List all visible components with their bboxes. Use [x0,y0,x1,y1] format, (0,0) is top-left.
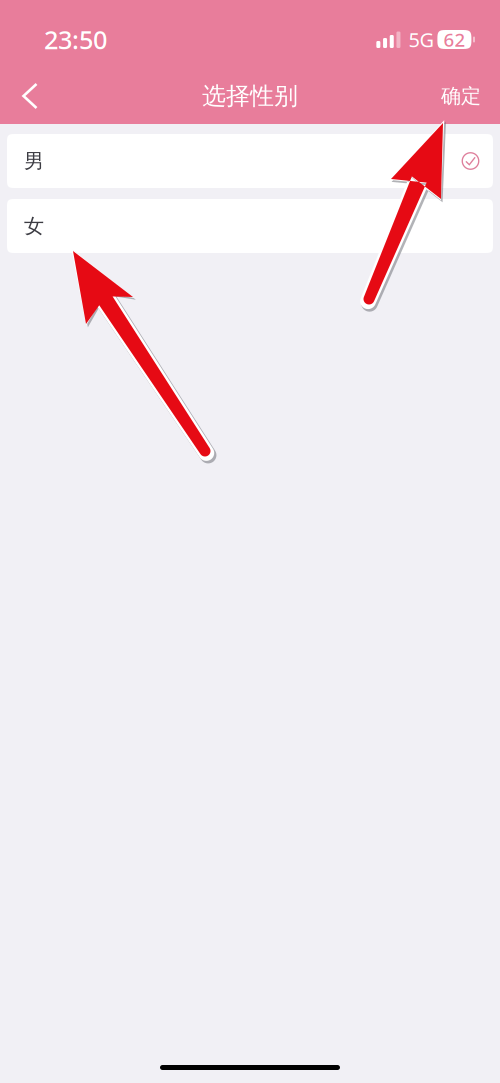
button[interactable]: Back [8,68,52,124]
button[interactable]: 确定 [441,68,500,124]
staticText: 5G [408,26,434,53]
staticText: 女 [24,214,44,238]
staticText: 确定 [441,84,481,108]
staticText: 男 [24,149,44,173]
staticText: 62 [443,27,465,52]
button[interactable]: 女 [7,199,493,253]
button[interactable]: 男 [7,134,493,188]
staticText: 23:50 [44,23,107,56]
staticText: 选择性别 [202,81,298,111]
